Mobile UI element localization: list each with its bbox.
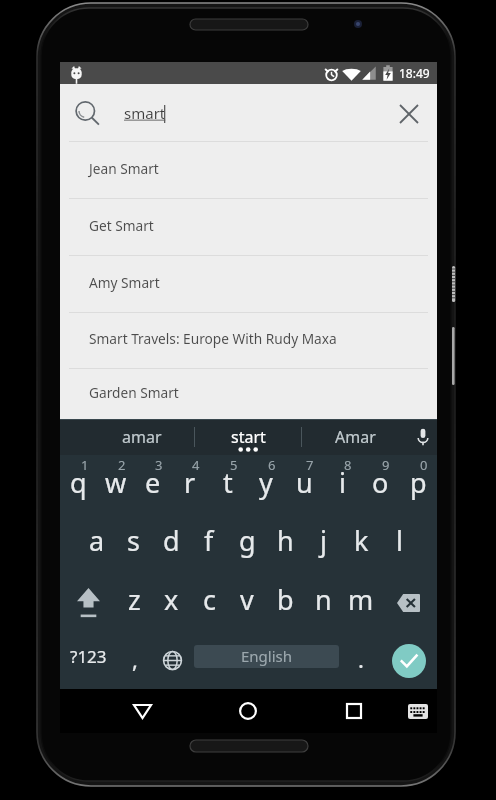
- staticText: 1: [81, 456, 89, 474]
- button[interactable]: Garden Smart: [60, 369, 437, 419]
- staticText: Garden Smart: [89, 383, 179, 402]
- button[interactable]: Clear search: [388, 93, 429, 134]
- button[interactable]: d: [152, 514, 190, 573]
- staticText: Smart Travels: Europe With Rudy Maxa: [89, 329, 337, 348]
- staticText: .: [358, 644, 364, 674]
- button[interactable]: .: [342, 632, 380, 689]
- staticText: k: [354, 522, 369, 559]
- button[interactable]: Change keyboard language: [153, 632, 191, 689]
- staticText: Amar: [335, 426, 376, 448]
- staticText: w: [105, 464, 127, 501]
- button[interactable]: Amy Smart: [60, 256, 437, 312]
- staticText: q: [70, 464, 87, 501]
- staticText: Amy Smart: [89, 273, 160, 292]
- staticText: 0: [420, 456, 428, 474]
- staticText: o: [372, 464, 389, 501]
- staticText: 7: [306, 456, 314, 474]
- button[interactable]: j: [304, 514, 342, 573]
- staticText: i: [339, 464, 346, 501]
- button[interactable]: n: [304, 573, 342, 632]
- button[interactable]: Backspace: [380, 573, 437, 632]
- staticText: x: [164, 581, 179, 618]
- button[interactable]: Switch keyboard: [394, 689, 442, 733]
- button[interactable]: Voice input: [408, 419, 437, 455]
- staticText: e: [145, 464, 161, 501]
- button[interactable]: c: [190, 573, 228, 632]
- staticText: 2: [118, 456, 126, 474]
- staticText: r: [184, 464, 196, 501]
- staticText: 4: [192, 456, 200, 474]
- button[interactable]: 4: [171, 455, 209, 514]
- staticText: u: [296, 464, 313, 501]
- button[interactable]: amar: [89, 419, 194, 455]
- button[interactable]: 8: [323, 455, 361, 514]
- staticText: p: [410, 464, 427, 501]
- staticText: y: [259, 464, 273, 501]
- staticText: English: [241, 646, 293, 666]
- button[interactable]: Jean Smart: [60, 142, 437, 198]
- button[interactable]: v: [228, 573, 266, 632]
- staticText: s: [127, 522, 140, 559]
- button[interactable]: smart: [60, 84, 437, 141]
- button[interactable]: s: [115, 514, 152, 573]
- staticText: ?123: [70, 645, 107, 668]
- staticText: b: [277, 581, 294, 618]
- staticText: start: [231, 426, 266, 448]
- staticText: t: [223, 464, 233, 501]
- staticText: 6: [268, 456, 276, 474]
- button[interactable]: English: [191, 632, 342, 689]
- staticText: v: [240, 581, 254, 618]
- button[interactable]: Amar: [302, 419, 408, 455]
- staticText: j: [320, 522, 327, 559]
- button[interactable]: Home: [224, 689, 272, 733]
- button[interactable]: Shift: [60, 573, 116, 632]
- button[interactable]: a: [78, 514, 115, 573]
- staticText: 8: [344, 456, 352, 474]
- staticText: a: [89, 522, 105, 559]
- button[interactable]: ?123: [60, 632, 116, 689]
- staticText: Jean Smart: [89, 159, 159, 178]
- button[interactable]: f: [190, 514, 228, 573]
- staticText: f: [204, 522, 214, 559]
- staticText: d: [163, 522, 180, 559]
- button[interactable]: start: [195, 419, 301, 455]
- button[interactable]: 6: [247, 455, 285, 514]
- button[interactable]: 7: [285, 455, 323, 514]
- button[interactable]: z: [116, 573, 153, 632]
- button[interactable]: 0: [399, 455, 437, 514]
- staticText: m: [348, 581, 374, 618]
- staticText: 9: [382, 456, 390, 474]
- staticText: g: [239, 522, 256, 559]
- button[interactable]: 1: [60, 455, 97, 514]
- button[interactable]: Back: [118, 689, 166, 733]
- button[interactable]: 2: [97, 455, 134, 514]
- staticText: h: [277, 522, 294, 559]
- staticText: c: [203, 581, 216, 618]
- button[interactable]: 3: [134, 455, 171, 514]
- staticText: amar: [122, 426, 162, 448]
- button[interactable]: l: [380, 514, 418, 573]
- staticText: ,: [132, 644, 138, 674]
- button[interactable]: k: [342, 514, 380, 573]
- button[interactable]: x: [153, 573, 190, 632]
- staticText: 5: [230, 456, 238, 474]
- staticText: Get Smart: [89, 216, 154, 235]
- button[interactable]: 5: [209, 455, 247, 514]
- button[interactable]: Smart Travels: Europe With Rudy Maxa: [60, 313, 437, 368]
- button[interactable]: Get Smart: [60, 199, 437, 255]
- button[interactable]: m: [342, 573, 380, 632]
- button[interactable]: Recent apps: [330, 689, 378, 733]
- button[interactable]: Enter: [380, 632, 437, 689]
- staticText: z: [128, 581, 141, 618]
- staticText: 18:49: [399, 65, 430, 81]
- staticText: l: [396, 522, 403, 559]
- button[interactable]: b: [266, 573, 304, 632]
- button[interactable]: 9: [361, 455, 399, 514]
- button[interactable]: g: [228, 514, 266, 573]
- staticText: smart: [124, 103, 166, 123]
- staticText: n: [315, 581, 332, 618]
- button[interactable]: ,: [116, 632, 153, 689]
- staticText: 3: [155, 456, 163, 474]
- button[interactable]: h: [266, 514, 304, 573]
